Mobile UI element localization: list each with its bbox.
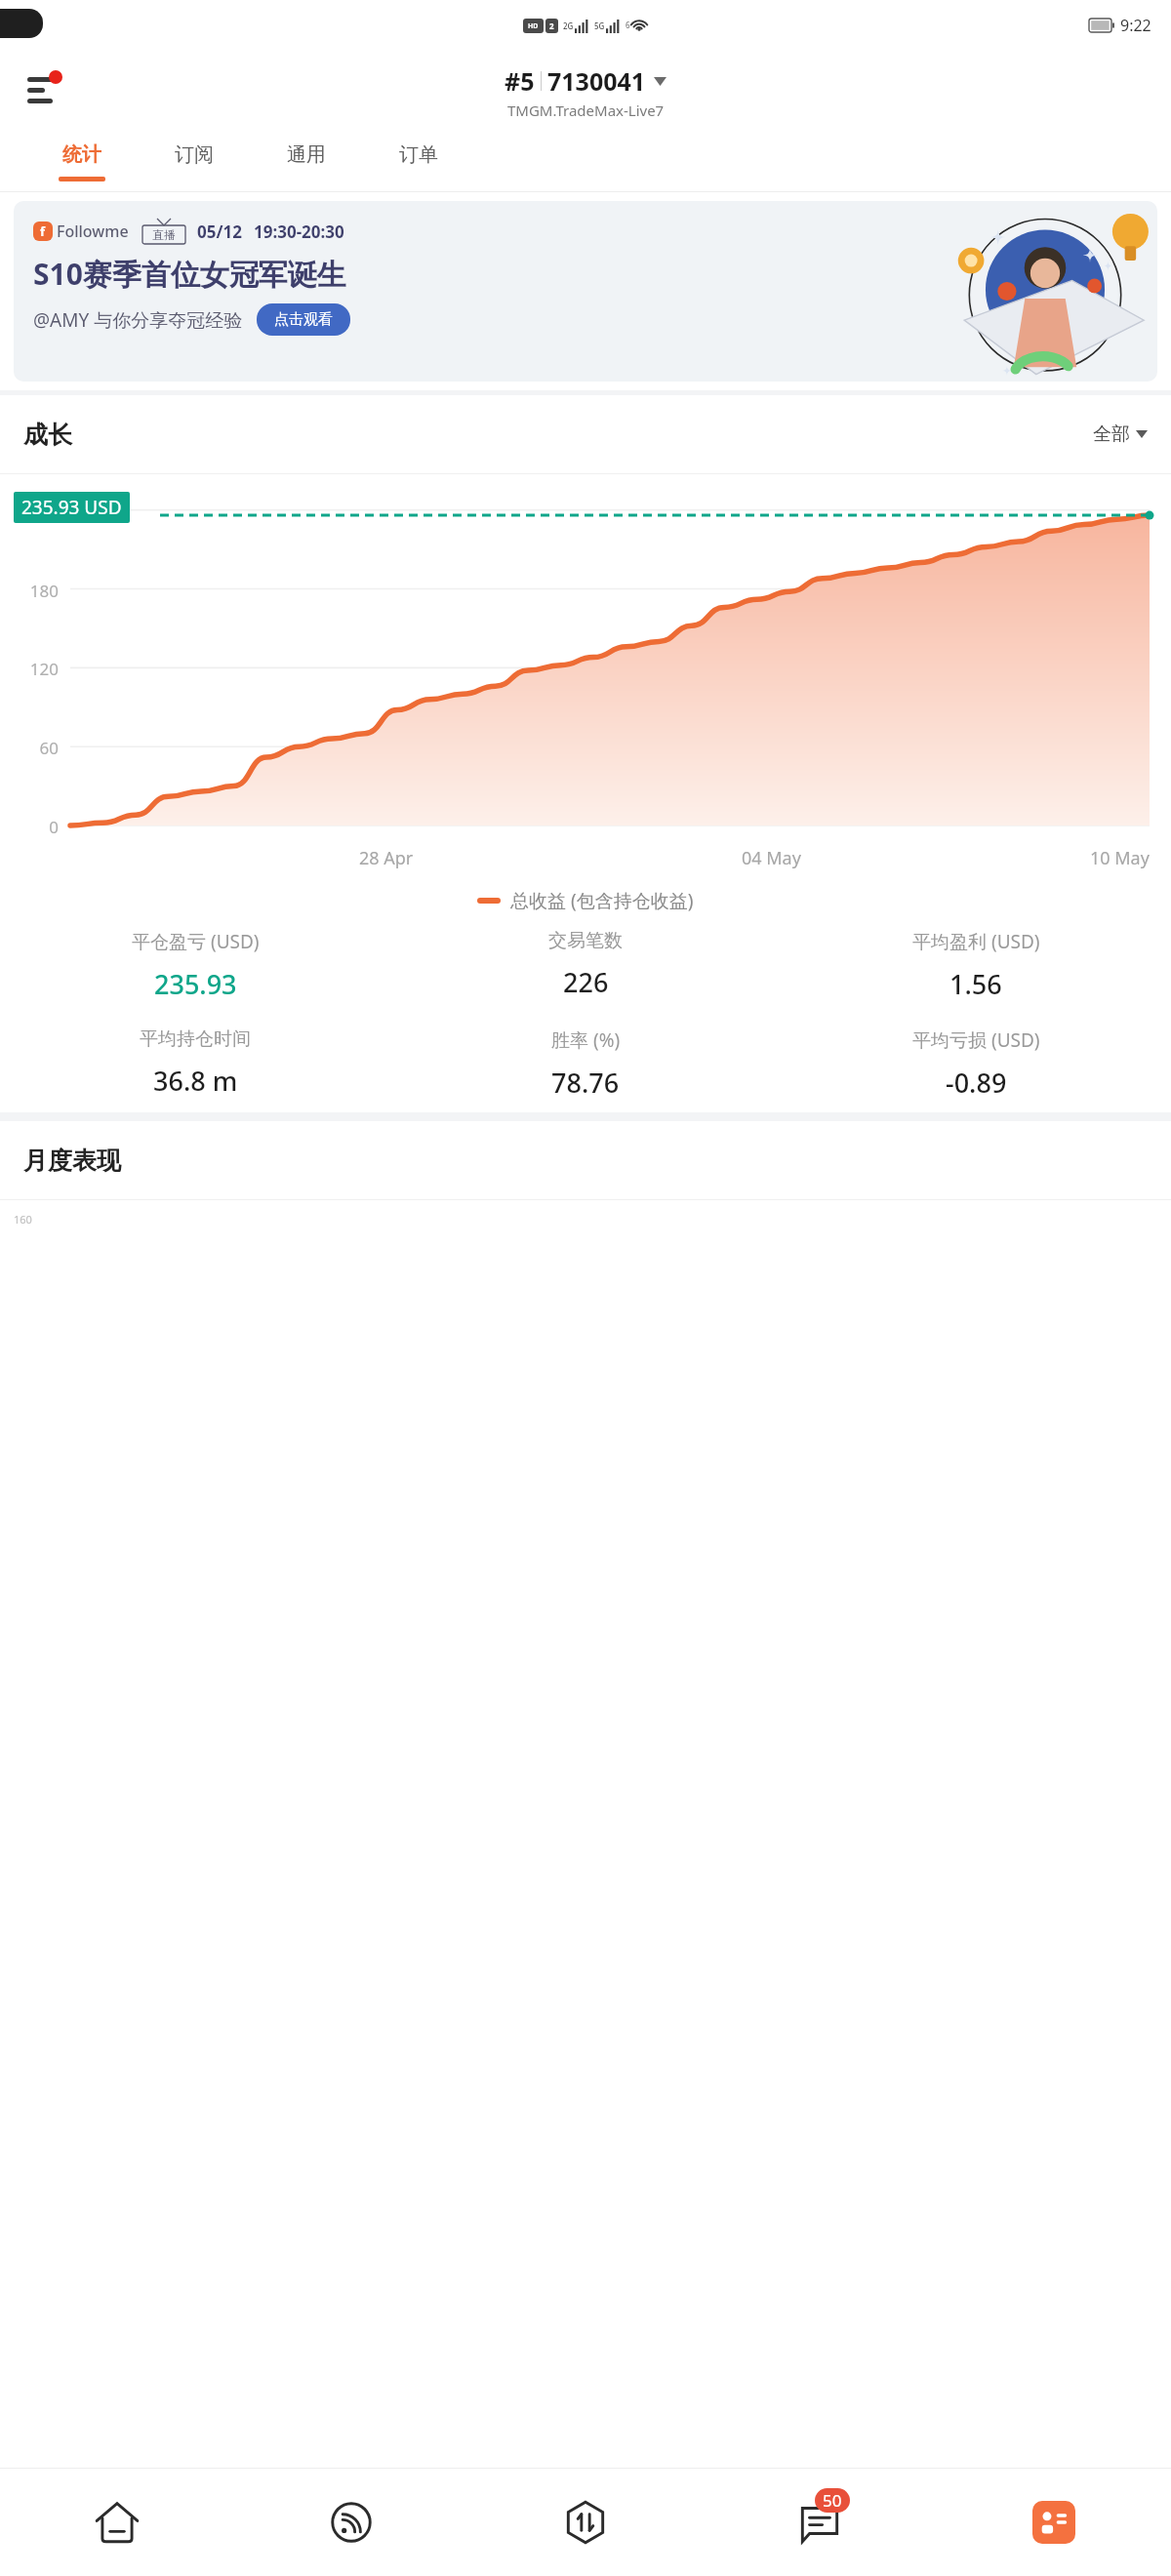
staticText: 月度表现 — [23, 1146, 121, 1176]
staticText: 9:22 — [1120, 15, 1151, 36]
staticText: 7130041 — [547, 64, 646, 98]
staticText: 235.93 USD — [21, 495, 122, 520]
staticText: 240 — [8, 501, 59, 523]
staticText: HD — [528, 21, 539, 31]
button[interactable]: 全部 — [1093, 423, 1148, 446]
staticText: 10 May — [1090, 846, 1150, 870]
button[interactable]: 统计 — [25, 137, 138, 191]
staticText: 05/12 — [197, 221, 242, 243]
staticText: 平均持仓时间 — [140, 1027, 251, 1051]
staticText: 0 — [8, 816, 59, 838]
button[interactable]: 通用 — [250, 137, 362, 191]
button[interactable]: Messages — [703, 2469, 937, 2576]
button[interactable]: 点击观看 — [257, 303, 350, 336]
button[interactable]: 订阅 — [138, 137, 250, 191]
button[interactable]: #5 — [505, 64, 666, 98]
staticText: 订单 — [399, 142, 438, 167]
staticText: 订阅 — [175, 142, 214, 167]
staticText: 6 — [626, 20, 630, 30]
staticText: @AMY 与你分享夺冠经验 — [33, 307, 243, 333]
staticText: 通用 — [287, 142, 326, 167]
staticText: 统计 — [62, 142, 101, 167]
button[interactable]: Profile — [937, 2469, 1171, 2576]
staticText: 60 — [8, 737, 59, 759]
staticText: 19:30-20:30 — [254, 221, 344, 243]
staticText: 交易笔数 — [548, 929, 623, 952]
staticText: 226 — [563, 964, 609, 1000]
staticText: 50 — [823, 2489, 842, 2512]
staticText: f — [40, 222, 46, 240]
button[interactable]: Trade — [468, 2469, 703, 2576]
staticText: 28 Apr — [359, 846, 414, 870]
staticText: 平均盈利 (USD) — [912, 929, 1040, 954]
staticText: 2G — [563, 20, 574, 31]
staticText: 点击观看 — [274, 310, 333, 329]
staticText: 总收益 (包含持仓收益) — [510, 888, 694, 913]
staticText: 78.76 — [551, 1065, 620, 1101]
staticText: 235.93 — [154, 966, 237, 1002]
staticText: 5G — [594, 20, 605, 31]
button[interactable]: 订单 — [362, 137, 474, 191]
staticText: 直播 — [152, 227, 176, 242]
staticText: #5 — [505, 64, 535, 98]
staticText: TMGM.TradeMax-Live7 — [507, 101, 665, 120]
staticText: 180 — [8, 580, 59, 602]
button[interactable]: f — [14, 201, 1157, 382]
staticText: 1.56 — [949, 966, 1002, 1002]
button[interactable]: Signals — [234, 2469, 468, 2576]
staticText: 平仓盈亏 (USD) — [132, 929, 260, 954]
staticText: 120 — [8, 658, 59, 680]
staticText: 160 — [14, 1212, 32, 1227]
staticText: 平均亏损 (USD) — [912, 1027, 1040, 1053]
button[interactable]: Menu — [18, 63, 74, 120]
staticText: S10赛季首位女冠军诞生 — [33, 254, 346, 294]
staticText: 04 May — [742, 846, 801, 870]
staticText: 全部 — [1093, 423, 1130, 446]
staticText: Followme — [57, 221, 129, 242]
staticText: 胜率 (%) — [551, 1027, 621, 1053]
staticText: 36.8 m — [153, 1063, 238, 1099]
staticText: 2 — [549, 20, 554, 31]
staticText: 成长 — [23, 420, 72, 450]
staticText: -0.89 — [946, 1065, 1007, 1101]
button[interactable]: Home — [0, 2469, 234, 2576]
